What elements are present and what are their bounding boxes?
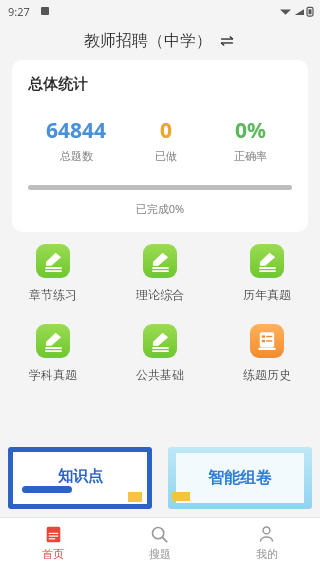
button[interactable]: 首页 [0,518,106,568]
staticText: 0% [235,116,266,145]
button[interactable]: 历年真题 [213,244,320,302]
staticText: 章节练习 [29,287,77,302]
staticText: 64844 [46,116,107,145]
staticText: 已做 [155,149,177,163]
button[interactable]: 切换科目 [218,32,236,50]
staticText: 练题历史 [243,367,291,382]
staticText: 正确率 [234,149,267,163]
button[interactable]: 知识点 [8,447,152,509]
staticText: 教师招聘（中学） [84,31,212,51]
button[interactable]: 学科真题 [0,324,106,382]
staticText: 智能组卷 [208,468,272,488]
staticText: 9:27 [8,4,30,19]
staticText: 我的 [256,547,278,561]
button[interactable]: 公共基础 [106,324,213,382]
staticText: 总体统计 [28,75,88,94]
button[interactable]: 智能组卷 [168,447,312,509]
button[interactable]: 练题历史 [213,324,320,382]
staticText: 总题数 [60,149,93,163]
staticText: 搜题 [149,547,171,561]
staticText: 学科真题 [29,367,77,382]
staticText: 公共基础 [136,367,184,382]
button[interactable]: 理论综合 [106,244,213,302]
button[interactable]: 我的 [213,518,320,568]
staticText: 历年真题 [243,287,291,302]
staticText: 0 [160,116,173,145]
button[interactable]: 章节练习 [0,244,106,302]
button[interactable]: 搜题 [106,518,213,568]
staticText: 知识点 [58,467,103,486]
staticText: 首页 [42,547,64,561]
staticText: 理论综合 [136,287,184,302]
staticText: 已完成0% [28,201,292,216]
